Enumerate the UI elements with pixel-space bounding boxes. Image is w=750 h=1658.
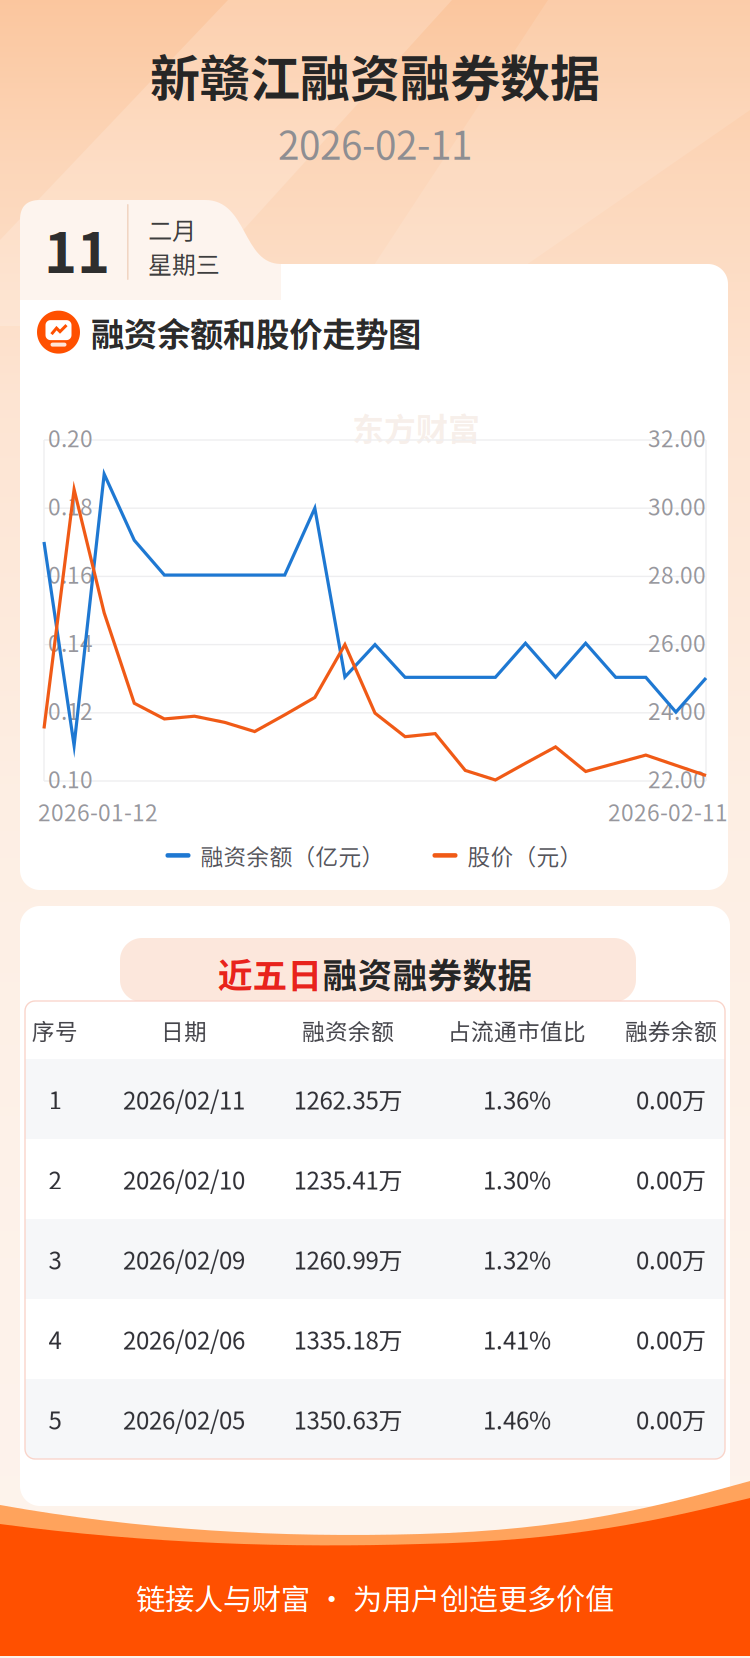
staticText: 融资余额 xyxy=(302,1014,394,1046)
staticText: 股价（元） xyxy=(467,839,582,872)
staticText: 占流通市值比 xyxy=(448,1014,586,1046)
staticText: 5 xyxy=(48,1402,61,1436)
staticText: 融资余额和股价走势图 xyxy=(91,308,421,356)
staticText: 2 xyxy=(48,1162,61,1196)
staticText: 链接人与财富 · 为用户创造更多价值 xyxy=(136,1576,614,1618)
staticText: 序号 xyxy=(32,1014,78,1046)
staticText: 0.00万 xyxy=(636,1162,706,1196)
staticText: 0.20 xyxy=(48,421,93,454)
staticText: 2026/02/11 xyxy=(123,1082,245,1116)
staticText: 0.18 xyxy=(48,489,93,522)
staticText: 0.12 xyxy=(48,694,93,727)
staticText: 1.30% xyxy=(483,1162,551,1196)
staticText: 东方财富 xyxy=(352,404,480,450)
staticText: 0.10 xyxy=(48,762,93,795)
staticText: 22.00 xyxy=(648,762,706,795)
staticText: 二月 xyxy=(148,212,196,247)
staticText: 3 xyxy=(48,1242,61,1276)
staticText: 1.46% xyxy=(483,1402,551,1436)
staticText: 2026-01-12 xyxy=(38,795,158,828)
staticText: 2026/02/05 xyxy=(123,1402,245,1436)
staticText: 0.00万 xyxy=(636,1242,706,1276)
staticText: 2026/02/06 xyxy=(123,1322,245,1356)
staticText: 28.00 xyxy=(648,557,706,590)
staticText: 2026-02-11 xyxy=(278,115,472,171)
staticText: 0.16 xyxy=(48,557,93,590)
staticText: 0.00万 xyxy=(636,1322,706,1356)
staticText: 融券余额 xyxy=(625,1014,717,1046)
staticText: 1.32% xyxy=(483,1242,551,1276)
staticText: 11 xyxy=(44,208,110,289)
staticText: 1.36% xyxy=(483,1082,551,1116)
staticText: 新赣江融资融券数据 xyxy=(150,39,600,111)
staticText: 24.00 xyxy=(648,694,706,727)
staticText: 30.00 xyxy=(648,489,706,522)
staticText: 1.41% xyxy=(483,1322,551,1356)
staticText: 1235.41万 xyxy=(293,1162,402,1196)
staticText: 融资余额（亿元） xyxy=(200,839,384,872)
staticText: 1335.18万 xyxy=(293,1322,402,1356)
staticText: 1350.63万 xyxy=(293,1402,402,1436)
staticText: 0.00万 xyxy=(636,1082,706,1116)
staticText: 2026/02/09 xyxy=(123,1242,245,1276)
staticText: 0.14 xyxy=(48,626,93,658)
staticText: 0.00万 xyxy=(636,1402,706,1436)
staticText: 1260.99万 xyxy=(293,1242,402,1276)
staticText: 2026-02-11 xyxy=(608,795,728,828)
staticText: 26.00 xyxy=(648,626,706,658)
staticText: 1262.35万 xyxy=(293,1082,402,1116)
staticText: 32.00 xyxy=(648,421,706,454)
staticText: 星期三 xyxy=(148,246,220,281)
staticText: 东方财富 xyxy=(320,1236,448,1282)
staticText: 2026/02/10 xyxy=(123,1162,245,1196)
staticText: 4 xyxy=(48,1322,61,1356)
staticText: 近五日 xyxy=(217,948,322,998)
staticText: 融资融券数据 xyxy=(322,948,532,998)
staticText: 日期 xyxy=(161,1014,207,1046)
staticText: 1 xyxy=(48,1082,61,1116)
